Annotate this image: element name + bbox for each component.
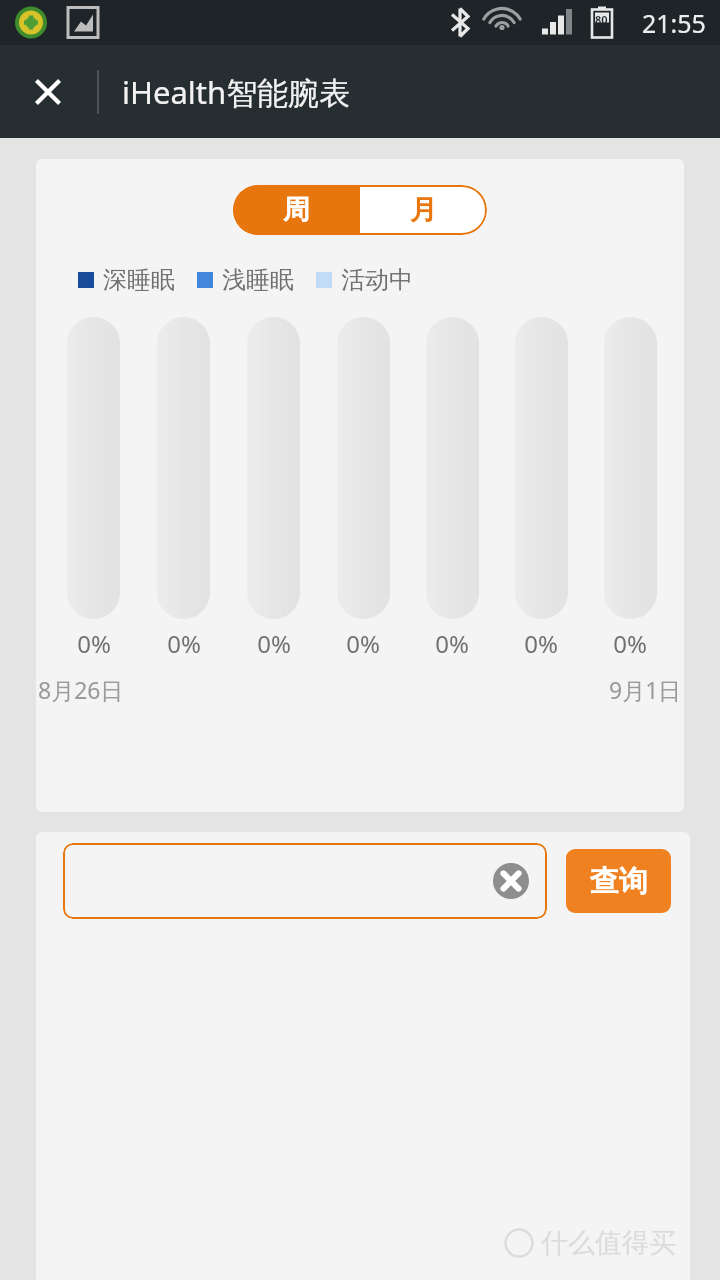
staticText: 0% xyxy=(167,627,201,660)
staticText: 8月26日 xyxy=(38,674,124,705)
staticText: 活动中 xyxy=(341,265,413,295)
staticText: 深睡眠 xyxy=(103,265,175,295)
button[interactable]: 查询 xyxy=(566,849,671,913)
staticText: 0% xyxy=(435,627,469,660)
button[interactable]: Clear xyxy=(63,843,547,919)
button[interactable]: 月 xyxy=(360,185,487,235)
staticText: 浅睡眠 xyxy=(222,265,294,295)
staticText: 9月1日 xyxy=(609,674,682,705)
button[interactable]: Close xyxy=(8,52,88,132)
staticText: 0% xyxy=(346,627,380,660)
staticText: 0% xyxy=(524,627,558,660)
staticText: 80 xyxy=(595,12,608,27)
staticText: 什么值得买 xyxy=(541,1226,676,1260)
button[interactable]: Clear xyxy=(493,863,529,899)
staticText: 21:55 xyxy=(642,6,706,40)
staticText: 月 xyxy=(410,193,437,227)
staticText: iHealth智能腕表 xyxy=(122,71,351,113)
staticText: 0% xyxy=(257,627,291,660)
staticText: 0% xyxy=(613,627,647,660)
button[interactable]: 周 xyxy=(233,185,360,235)
staticText: 查询 xyxy=(590,863,648,900)
staticText: 0% xyxy=(77,627,111,660)
staticText: 周 xyxy=(283,193,310,227)
